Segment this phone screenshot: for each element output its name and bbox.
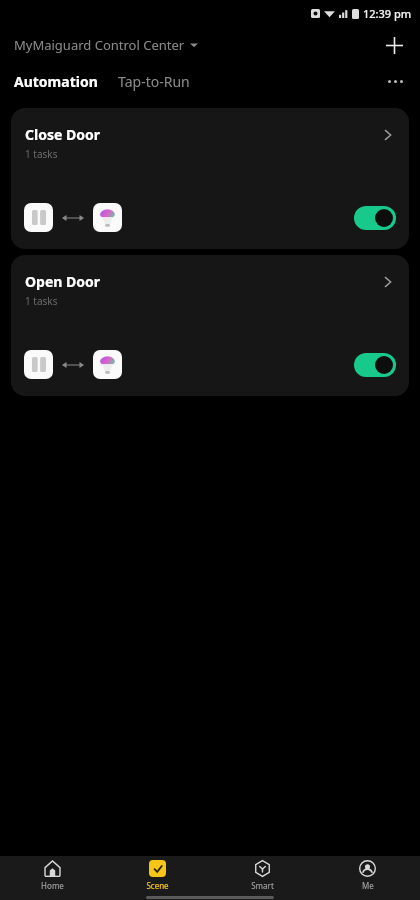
staticText: 1 tasks: [25, 294, 58, 308]
button[interactable]: Smart: [210, 860, 315, 891]
staticText: Smart: [251, 880, 274, 891]
button[interactable]: More options: [378, 64, 412, 98]
button[interactable]: Close Door: [11, 108, 409, 249]
staticText: 1 tasks: [25, 147, 58, 161]
button[interactable]: Me: [315, 860, 420, 891]
button[interactable]: Automation: [13, 68, 99, 95]
button[interactable]: Toggle automation: [354, 206, 396, 230]
button[interactable]: Scene: [105, 860, 210, 891]
staticText: Automation: [14, 72, 98, 91]
button[interactable]: Toggle automation: [354, 353, 396, 377]
staticText: MyMaiguard Control Center: [14, 36, 185, 54]
staticText: Close Door: [25, 125, 100, 144]
staticText: Open Door: [25, 272, 101, 291]
button[interactable]: MyMaiguard Control Center: [14, 36, 198, 54]
staticText: Home: [41, 880, 64, 891]
button[interactable]: Add: [376, 27, 412, 63]
button[interactable]: Tap-to-Run: [117, 68, 191, 95]
staticText: Tap-to-Run: [118, 72, 190, 91]
button[interactable]: Open Door: [11, 255, 409, 396]
staticText: 12:39 pm: [363, 6, 412, 21]
staticText: Scene: [146, 880, 169, 891]
staticText: Me: [362, 880, 374, 891]
button[interactable]: Home: [0, 860, 105, 891]
